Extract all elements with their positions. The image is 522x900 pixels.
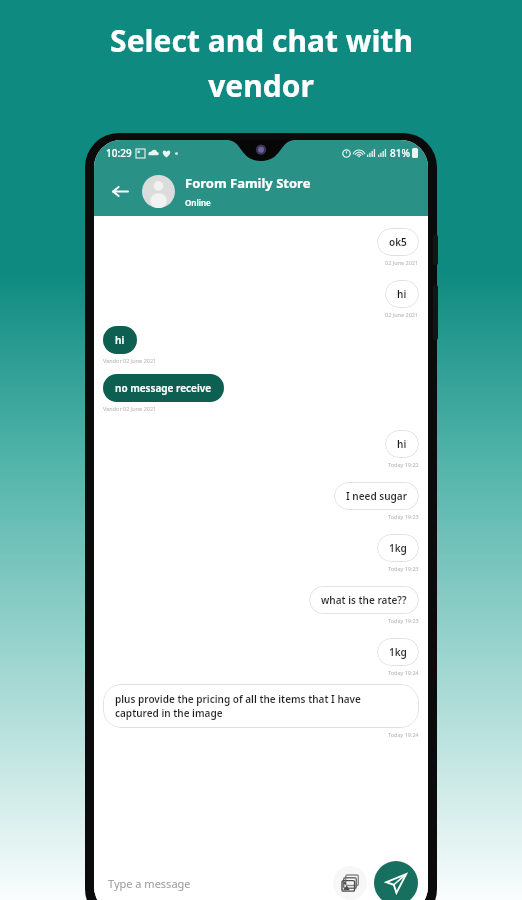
staticText: Vendor 02 June 2021 [103, 357, 157, 364]
staticText: what is the rate?? [321, 593, 407, 607]
button[interactable]: I need sugar [334, 482, 419, 510]
staticText: 02 June 2021 [385, 259, 419, 266]
staticText: Online [185, 197, 211, 208]
staticText: Select and chat with [110, 20, 413, 61]
button[interactable]: hi [385, 430, 419, 458]
staticText: Today 19:22 [388, 461, 419, 468]
button[interactable]: 1kg [377, 638, 419, 666]
staticText: Today 19:24 [388, 731, 419, 738]
button[interactable]: 1kg [377, 534, 419, 562]
staticText: ok5 [389, 235, 407, 249]
button[interactable]: Type a message [108, 876, 333, 891]
staticText: plus provide the pricing of all the item… [115, 692, 407, 720]
staticText: 1kg [389, 645, 407, 659]
staticText: hi [115, 333, 125, 347]
button[interactable]: Profile photo [142, 175, 175, 208]
staticText: vendor [208, 65, 314, 106]
button[interactable]: hi [385, 280, 419, 308]
button[interactable]: what is the rate?? [309, 586, 419, 614]
staticText: Today 19:23 [388, 617, 419, 624]
staticText: Vendor 02 June 2021 [103, 405, 157, 412]
staticText: Today 19:23 [388, 513, 419, 520]
staticText: 1kg [389, 541, 407, 555]
staticText: 10:29 [106, 146, 132, 160]
button[interactable]: Forom Family Store [185, 174, 418, 208]
staticText: 81% [390, 146, 410, 160]
staticText: Today 19:24 [388, 669, 419, 676]
button[interactable]: plus provide the pricing of all the item… [103, 684, 419, 728]
button[interactable]: ok5 [377, 228, 419, 256]
button[interactable]: Back [104, 176, 134, 206]
staticText: 02 June 2021 [385, 311, 419, 318]
button[interactable]: Send [374, 861, 418, 900]
staticText: I need sugar [346, 489, 407, 503]
staticText: Today 19:23 [388, 565, 419, 572]
button[interactable]: Attach image [333, 866, 367, 900]
button[interactable]: no message receive [103, 374, 224, 402]
staticText: Type a message [108, 876, 191, 891]
staticText: hi [397, 437, 407, 451]
staticText: hi [397, 287, 407, 301]
staticText: Forom Family Store [185, 174, 311, 192]
button[interactable]: hi [103, 326, 137, 354]
staticText: no message receive [115, 381, 212, 395]
